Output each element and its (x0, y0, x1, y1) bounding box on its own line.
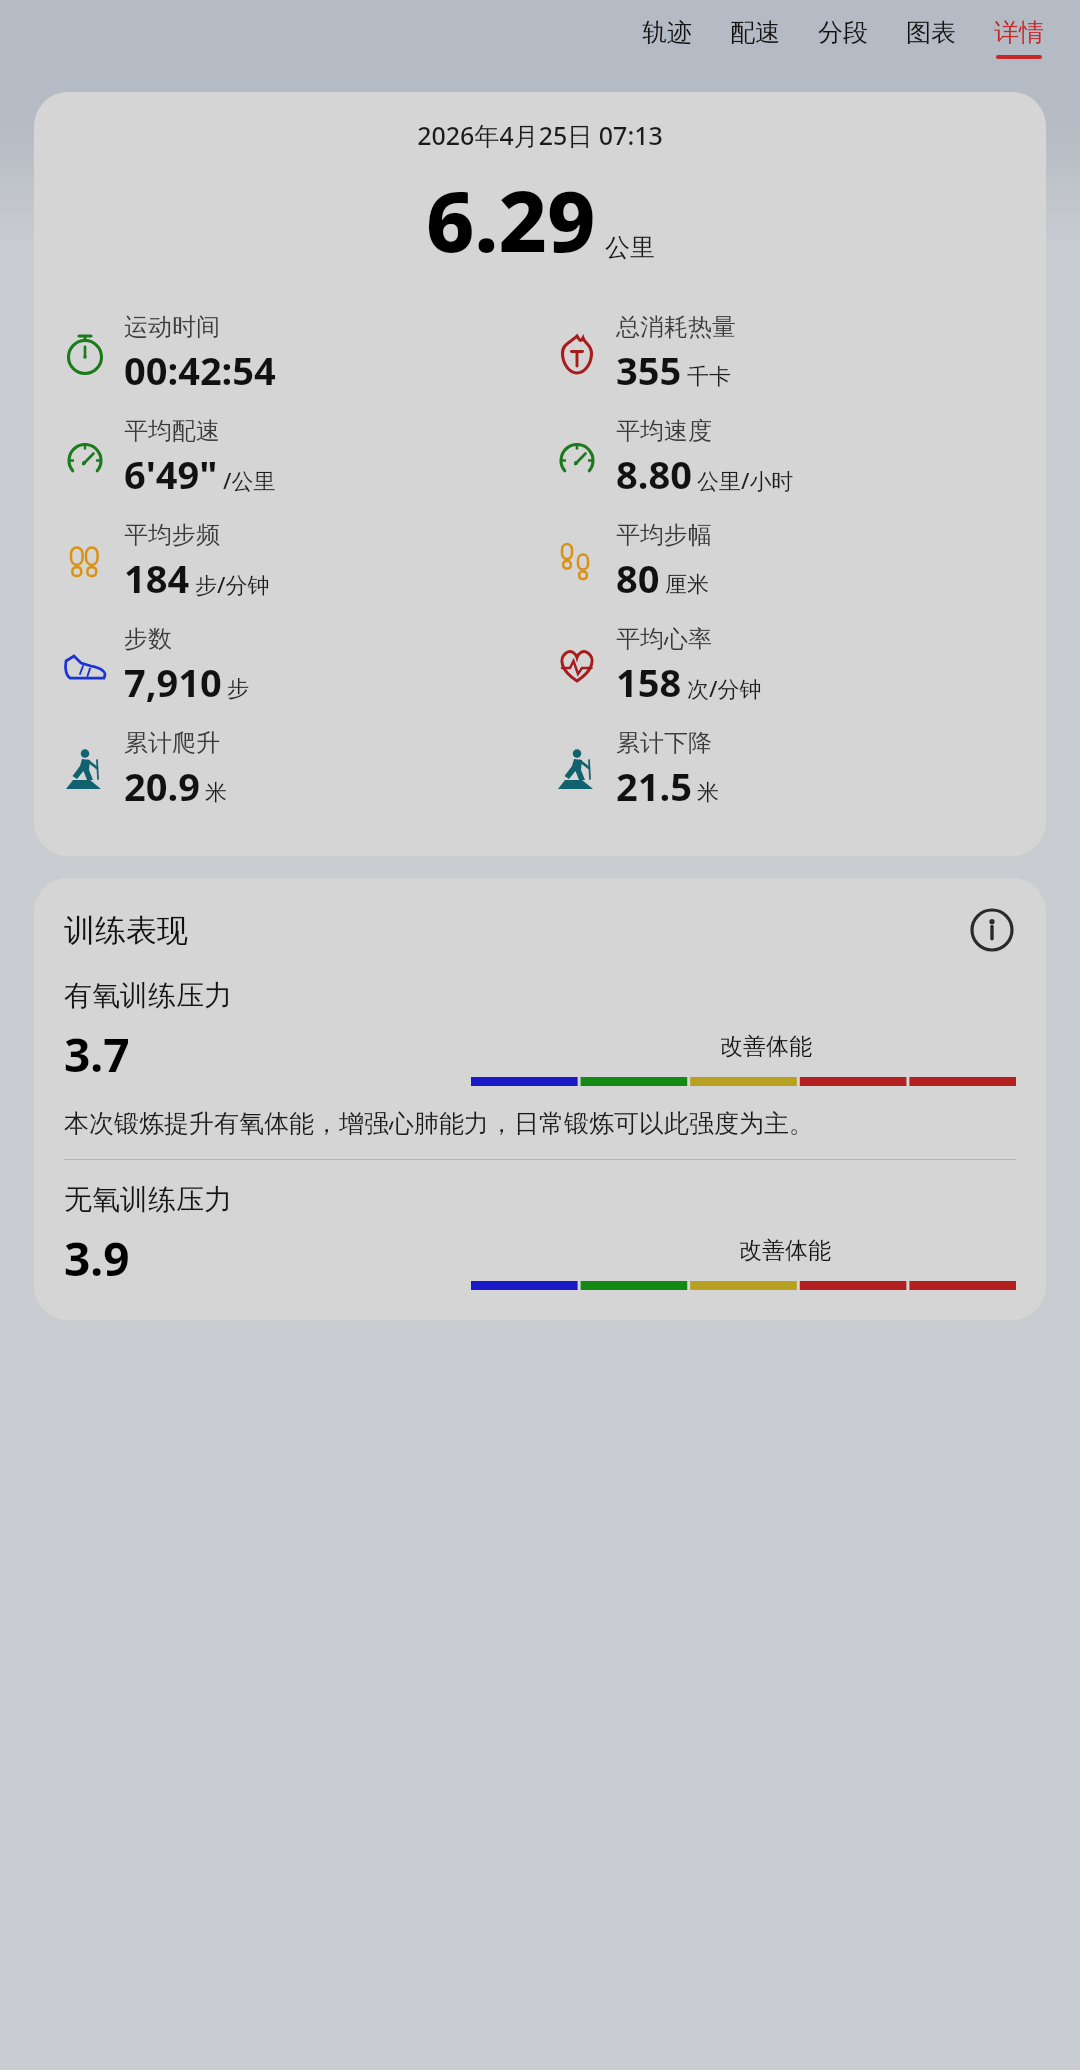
staticText: /公里 (223, 465, 276, 495)
staticText: 轨迹 (642, 17, 692, 48)
staticText: 平均配速 (124, 416, 220, 446)
staticText: 平均步频 (124, 520, 220, 550)
staticText: 本次锻炼提升有氧体能，增强心肺能力，日常锻炼可以此强度为主。 (64, 1108, 814, 1139)
staticText: 3.7 (64, 1023, 130, 1086)
staticText: 2026年4月25日 07:13 (34, 118, 1046, 152)
button[interactable]: 平均速度 (552, 406, 794, 510)
button[interactable]: 详情 (992, 17, 1046, 59)
button[interactable]: 图表 (904, 17, 958, 59)
staticText: 158 (616, 656, 682, 708)
staticText: 3.9 (64, 1227, 130, 1290)
staticText: 千卡 (687, 363, 731, 391)
staticText: 步 (227, 675, 249, 703)
button[interactable]: 分段 (816, 17, 870, 59)
staticText: 184 (124, 552, 190, 604)
staticText: 分段 (818, 17, 868, 48)
staticText: 平均心率 (616, 624, 712, 654)
button[interactable]: 平均配速 (60, 406, 276, 510)
button[interactable]: 平均心率 (552, 614, 762, 718)
staticText: 8.80 (616, 448, 692, 500)
button[interactable]: 累计爬升 (60, 718, 227, 822)
staticText: 训练表现 (64, 911, 188, 950)
staticText: 6.29 (426, 162, 596, 276)
button[interactable]: 平均步频 (60, 510, 270, 614)
staticText: 步/分钟 (195, 569, 270, 599)
staticText: 21.5 (616, 760, 692, 812)
staticText: 355 (616, 344, 682, 396)
staticText: 80 (616, 552, 660, 604)
staticText: 配速 (730, 17, 780, 48)
staticText: 米 (205, 779, 227, 807)
staticText: 平均步幅 (616, 520, 712, 550)
button[interactable]: 信息 (968, 906, 1016, 954)
staticText: 00:42:54 (124, 344, 276, 396)
button[interactable]: 2026年4月25日 07:13 (34, 92, 1046, 856)
staticText: 米 (697, 779, 719, 807)
staticText: 累计爬升 (124, 728, 220, 758)
button[interactable]: 总消耗热量 (552, 302, 736, 406)
button[interactable]: 平均步幅 (552, 510, 712, 614)
staticText: 无氧训练压力 (64, 1182, 232, 1217)
staticText: 运动时间 (124, 312, 220, 342)
staticText: 公里 (605, 232, 655, 263)
staticText: 6'49" (124, 448, 218, 500)
staticText: 步数 (124, 624, 172, 654)
staticText: 改善体能 (739, 1236, 831, 1265)
button[interactable]: 运动时间 (60, 302, 276, 406)
button[interactable]: 累计下降 (552, 718, 719, 822)
staticText: 详情 (994, 17, 1044, 48)
staticText: 平均速度 (616, 416, 712, 446)
staticText: 改善体能 (720, 1032, 812, 1061)
button[interactable]: 配速 (728, 17, 782, 59)
staticText: 7,910 (124, 656, 222, 708)
staticText: 公里/小时 (697, 465, 794, 495)
staticText: 次/分钟 (687, 673, 762, 703)
staticText: 有氧训练压力 (64, 978, 232, 1013)
staticText: 累计下降 (616, 728, 712, 758)
button[interactable]: 步数 (60, 614, 249, 718)
staticText: 20.9 (124, 760, 200, 812)
staticText: 总消耗热量 (616, 312, 736, 342)
staticText: 图表 (906, 17, 956, 48)
staticText: 厘米 (665, 571, 709, 599)
button[interactable]: 轨迹 (640, 17, 694, 59)
